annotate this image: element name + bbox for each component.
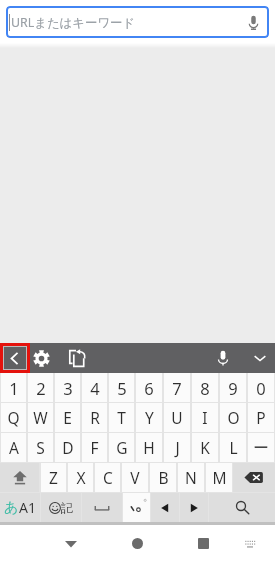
button[interactable]: I (192, 403, 218, 432)
staticText: 9 (228, 377, 238, 399)
button[interactable]: G (109, 433, 134, 462)
staticText: 4 (90, 377, 100, 399)
button[interactable]: A (1, 433, 26, 462)
staticText: J (175, 437, 180, 458)
button[interactable]: Back (54, 525, 88, 562)
button[interactable]: 9 (220, 373, 246, 402)
button[interactable]: S (28, 433, 53, 462)
staticText: U (171, 407, 183, 428)
staticText: B (158, 467, 169, 488)
staticText: R (90, 407, 100, 428)
button[interactable]: Home (120, 525, 154, 562)
button[interactable]: 2 (28, 373, 53, 402)
button[interactable]: B (150, 463, 176, 492)
staticText: M (212, 467, 227, 488)
staticText: URLまたはキーワード (11, 14, 136, 31)
button[interactable]: 3 (55, 373, 80, 402)
button[interactable]: Hide keyboard (245, 343, 275, 373)
button[interactable]: ー (248, 433, 274, 462)
staticText: F (90, 437, 99, 458)
button[interactable]: J (164, 433, 190, 462)
button[interactable]: Search (209, 493, 275, 522)
button[interactable]: U (164, 403, 190, 432)
button[interactable]: M (206, 463, 232, 492)
button[interactable]: D (55, 433, 80, 462)
staticText: Y (145, 407, 154, 428)
staticText: 1 (9, 377, 19, 399)
staticText: V (130, 467, 140, 488)
button[interactable]: 7 (164, 373, 190, 402)
button[interactable]: 記 (41, 493, 81, 522)
button[interactable]: Q (1, 403, 26, 432)
button[interactable]: E (55, 403, 80, 432)
button[interactable]: Settings (29, 343, 54, 373)
button[interactable]: K (192, 433, 218, 462)
staticText: T (117, 407, 126, 428)
button[interactable]: あ (0, 493, 40, 522)
button[interactable]: V (122, 463, 148, 492)
button[interactable]: Switch keyboard (233, 525, 267, 562)
staticText: 記 (61, 500, 73, 515)
staticText: S (36, 437, 45, 458)
button[interactable]: Shift (0, 463, 39, 492)
staticText: 7 (172, 377, 182, 399)
button[interactable]: Clipboard (54, 343, 100, 373)
button[interactable]: C (95, 463, 120, 492)
staticText: 0 (256, 377, 266, 399)
button[interactable]: 6 (136, 373, 162, 402)
button[interactable]: URLまたはキーワード (6, 6, 269, 38)
button[interactable]: L (220, 433, 246, 462)
button[interactable]: P (248, 403, 274, 432)
button[interactable]: Recent apps (186, 525, 220, 562)
button[interactable]: 8 (192, 373, 218, 402)
staticText: W (33, 407, 48, 428)
button[interactable]: 5 (109, 373, 134, 402)
staticText: あ (4, 499, 19, 517)
button[interactable]: Cursor right (180, 493, 208, 522)
staticText: P (256, 407, 266, 428)
staticText: I (202, 407, 208, 428)
button[interactable]: Y (136, 403, 162, 432)
staticText: 2 (36, 377, 46, 399)
staticText: 6 (144, 377, 154, 399)
button[interactable]: Dakuten (123, 493, 150, 522)
button[interactable]: X (68, 463, 93, 492)
button[interactable]: N (178, 463, 204, 492)
button[interactable]: F (82, 433, 107, 462)
staticText: A1 (19, 498, 36, 517)
staticText: H (143, 437, 155, 458)
staticText: 8 (200, 377, 210, 399)
staticText: C (103, 467, 113, 488)
button[interactable]: 0 (248, 373, 274, 402)
staticText: ー (253, 438, 269, 458)
button[interactable]: Voice input (201, 343, 245, 373)
staticText: A (9, 437, 19, 458)
staticText: X (76, 467, 86, 488)
button[interactable]: H (136, 433, 162, 462)
staticText: Q (7, 407, 20, 428)
button[interactable]: R (82, 403, 107, 432)
staticText: N (185, 467, 197, 488)
button[interactable]: Voice search (237, 6, 269, 38)
staticText: Z (49, 467, 58, 488)
staticText: E (63, 407, 72, 428)
button[interactable]: Back (0, 343, 29, 373)
button[interactable]: Space (82, 493, 122, 522)
button[interactable]: Z (41, 463, 66, 492)
button[interactable]: T (109, 403, 134, 432)
staticText: L (229, 437, 238, 458)
staticText: K (200, 437, 210, 458)
staticText: D (62, 437, 74, 458)
staticText: 5 (117, 377, 127, 399)
button[interactable]: 1 (1, 373, 26, 402)
button[interactable]: 4 (82, 373, 107, 402)
button[interactable]: Backspace (233, 463, 275, 492)
staticText: 3 (63, 377, 73, 399)
button[interactable]: O (220, 403, 246, 432)
staticText: G (116, 437, 128, 458)
button[interactable]: W (28, 403, 53, 432)
staticText: O (227, 407, 240, 428)
button[interactable]: Cursor left (151, 493, 179, 522)
